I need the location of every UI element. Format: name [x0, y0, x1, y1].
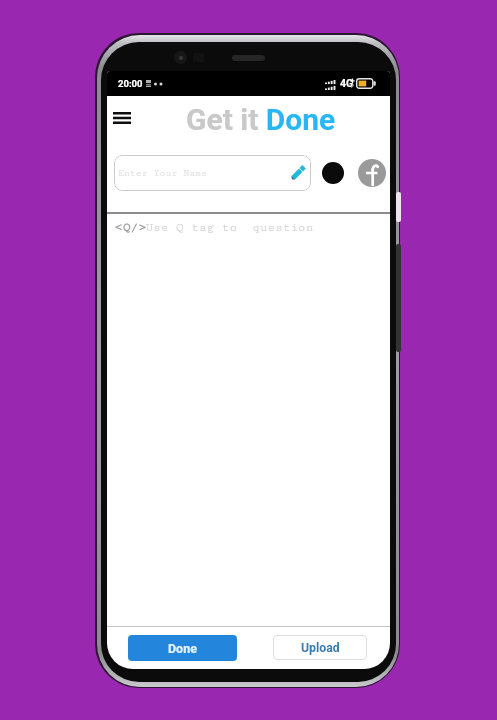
- staticText: Enter Your Name: [118, 168, 207, 179]
- button[interactable]: Sign in with Facebook: [358, 159, 386, 187]
- button[interactable]: Profile photo: [322, 162, 344, 184]
- button[interactable]: Menu: [108, 104, 136, 132]
- staticText: Upload: [301, 641, 340, 655]
- staticText: 20:00: [118, 78, 143, 89]
- button[interactable]: Done: [128, 635, 237, 661]
- button[interactable]: Edit name: [291, 166, 305, 180]
- other: Volume button: [396, 192, 401, 222]
- other: Power button: [396, 244, 401, 352]
- staticText: Done: [168, 641, 197, 656]
- button[interactable]: Upload: [273, 635, 367, 660]
- staticText: <Q/>Use Q tag to question: [115, 221, 314, 235]
- staticText: Get it Done: [186, 102, 336, 137]
- staticText: 4G: [340, 77, 354, 89]
- button[interactable]: Enter Your Name: [114, 155, 311, 191]
